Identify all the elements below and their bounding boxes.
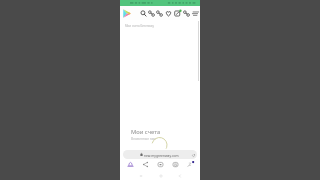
button[interactable]: Bookmarks xyxy=(153,159,168,170)
staticText: new.mygreenway.com xyxy=(144,153,179,157)
button[interactable]: Link xyxy=(147,6,155,20)
button[interactable]: Search xyxy=(139,6,147,20)
button[interactable]: Share xyxy=(173,6,182,20)
button[interactable]: Favorite xyxy=(164,6,173,20)
button[interactable]: Google Play xyxy=(120,6,139,20)
button[interactable]: History xyxy=(168,159,183,170)
button[interactable]: Home xyxy=(122,159,138,170)
button[interactable]: Reload xyxy=(191,153,195,157)
staticText: Мои счета Greenway xyxy=(125,24,154,28)
button[interactable]: Tabs xyxy=(183,159,198,170)
button[interactable]: Share xyxy=(138,159,153,170)
button[interactable]: Home xyxy=(151,172,170,180)
button[interactable]: Menu xyxy=(191,6,200,20)
button[interactable]: Attach xyxy=(155,6,164,20)
button[interactable]: Copy link xyxy=(182,6,191,20)
staticText: Мои счета xyxy=(131,128,161,136)
staticText: Вложенные паи xyxy=(131,137,156,141)
button[interactable]: new.mygreenway.com xyxy=(123,150,197,159)
